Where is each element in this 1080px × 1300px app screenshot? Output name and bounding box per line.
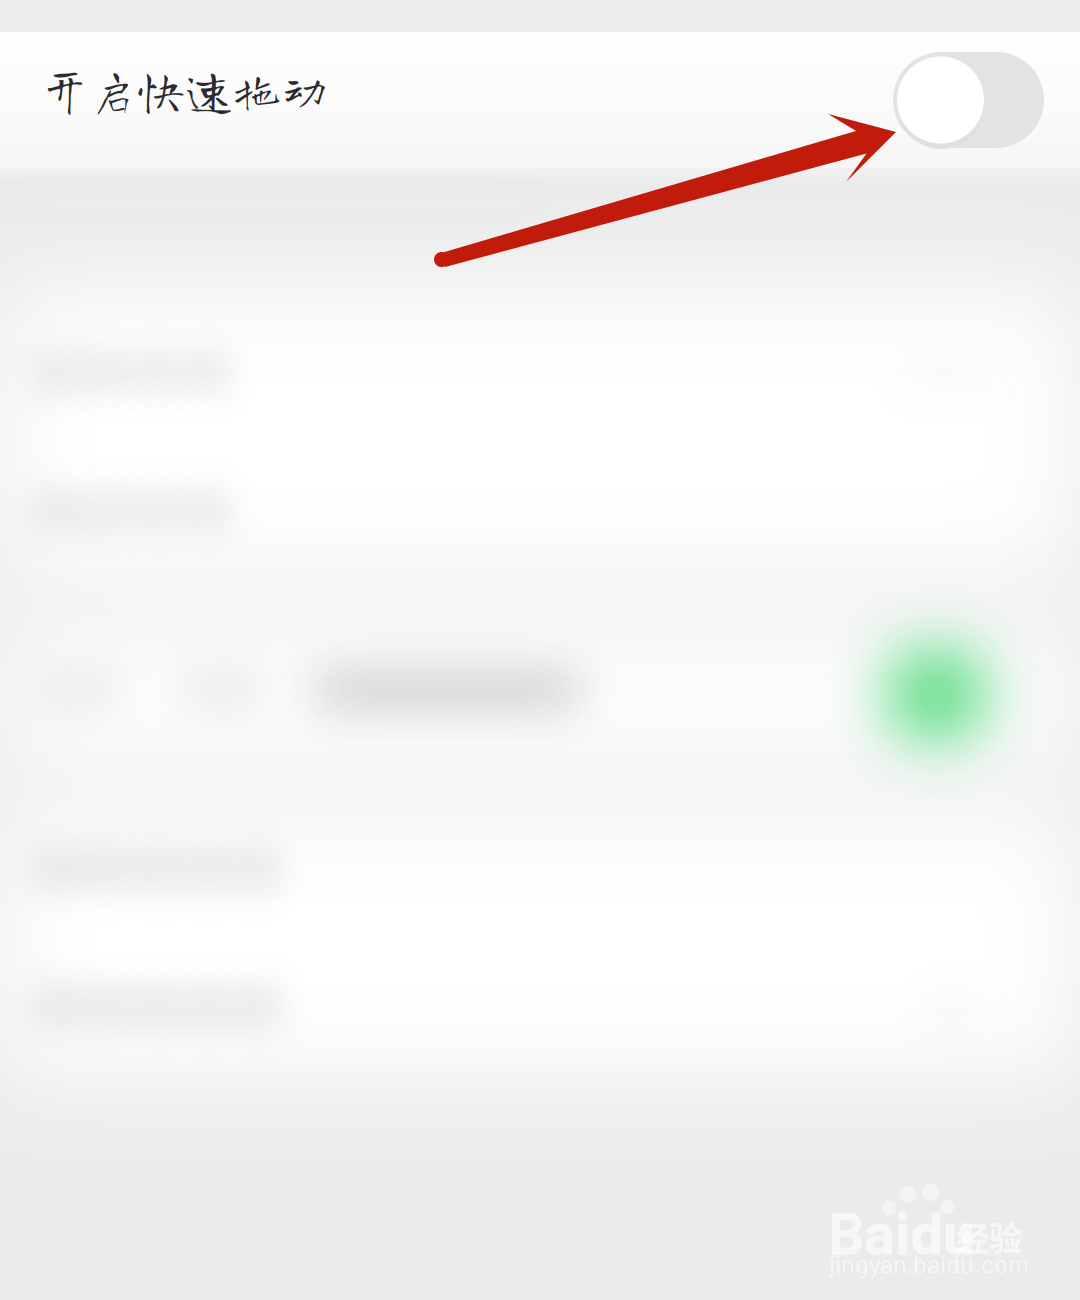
staticText: Baidu <box>828 1196 975 1266</box>
staticText: 开启快速拖动 <box>41 66 329 114</box>
staticText: jingyan.baidu.com <box>829 1248 1029 1278</box>
staticText: 经验 <box>956 1212 1022 1260</box>
button[interactable]: 开启快速拖动 <box>0 32 1080 168</box>
